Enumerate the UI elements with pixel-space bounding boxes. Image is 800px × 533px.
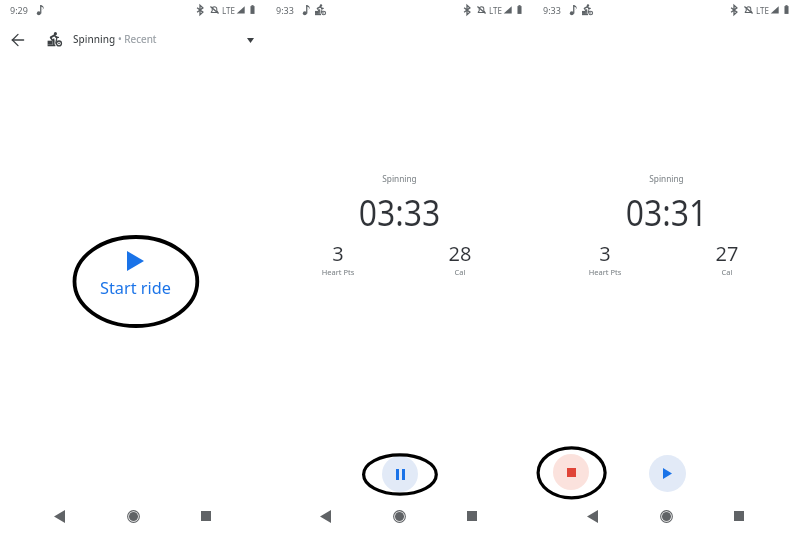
staticText: • Recent [118,32,157,46]
button[interactable]: Recents [190,503,222,529]
staticText: Spinning [544,172,789,184]
button[interactable]: Stop [553,454,589,490]
button[interactable]: Home [650,503,682,529]
button[interactable]: Back [576,503,608,529]
staticText: Heart Pts [565,267,645,277]
button[interactable]: Back [43,503,75,529]
button[interactable]: Recents [723,503,755,529]
button[interactable]: Back [5,27,30,52]
staticText: Start ride [100,277,171,299]
button[interactable]: Recents [456,503,488,529]
staticText: LTE [489,5,502,16]
button[interactable]: Pause [382,456,418,492]
staticText: 3 [565,240,645,267]
staticText: 9:33 [543,4,561,16]
staticText: 28 [420,240,500,267]
button[interactable]: Start ride [93,251,178,299]
button[interactable]: Spinning [73,28,157,50]
staticText: LTE [222,5,235,16]
button[interactable]: Resume [649,455,686,492]
staticText: Spinning [73,32,118,46]
staticText: 9:33 [276,4,294,16]
staticText: 27 [687,240,767,267]
button[interactable]: More options [239,29,261,51]
button[interactable]: Home [117,503,149,529]
staticText: 03:33 [281,188,518,237]
button[interactable]: Back [309,503,341,529]
staticText: Cal [420,267,500,277]
staticText: 03:31 [548,188,785,237]
staticText: Heart Pts [298,267,378,277]
staticText: LTE [756,5,769,16]
staticText: Spinning [277,172,522,184]
button[interactable]: Home [383,503,415,529]
staticText: 3 [298,240,378,267]
staticText: Cal [687,267,767,277]
staticText: 9:29 [10,4,28,16]
